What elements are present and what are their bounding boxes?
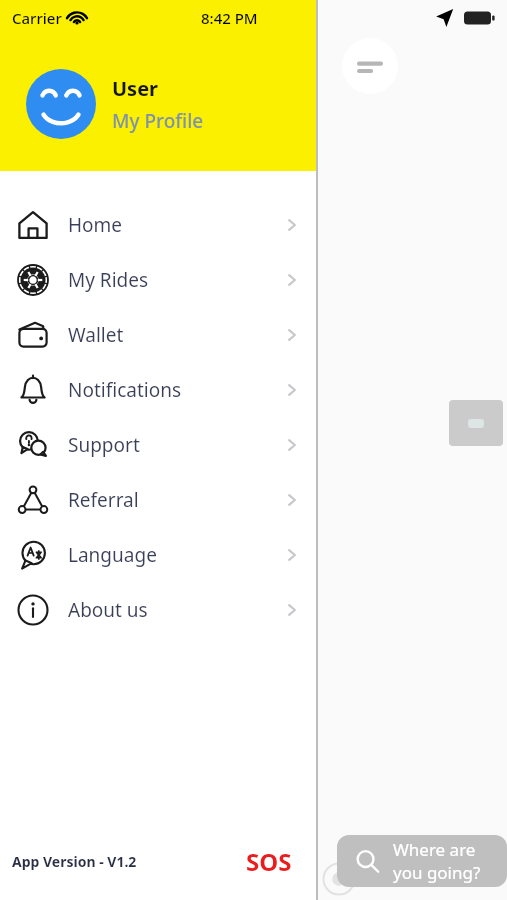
staticText: Wallet [68, 322, 124, 348]
button[interactable]: Home [0, 197, 318, 252]
staticText: Home [68, 212, 123, 238]
button[interactable]: Open menu [342, 38, 398, 94]
staticText: User [112, 75, 159, 102]
staticText: SOS [246, 845, 292, 878]
staticText: About us [68, 597, 148, 623]
button[interactable]: Wallet [0, 307, 318, 362]
button[interactable]: SOS [242, 843, 296, 880]
staticText: My Rides [68, 267, 149, 293]
button[interactable]: User [26, 69, 318, 139]
button[interactable]: Where are you going? [337, 835, 507, 887]
staticText: App Version - V1.2 [12, 852, 137, 871]
button[interactable]: Language [0, 527, 318, 582]
staticText: Language [68, 542, 157, 568]
staticText: Where are you going? [393, 838, 507, 884]
staticText: 8:42 PM [201, 8, 258, 28]
staticText: Notifications [68, 377, 182, 403]
button[interactable]: Support [0, 417, 318, 472]
button[interactable] [449, 400, 503, 446]
button[interactable]: Notifications [0, 362, 318, 417]
button[interactable]: Referral [0, 472, 318, 527]
staticText: My Profile [112, 108, 204, 134]
button[interactable]: My Rides [0, 252, 318, 307]
staticText: Carrier [12, 8, 62, 28]
staticText: Support [68, 432, 140, 458]
staticText: Referral [68, 487, 139, 513]
button[interactable]: About us [0, 582, 318, 637]
